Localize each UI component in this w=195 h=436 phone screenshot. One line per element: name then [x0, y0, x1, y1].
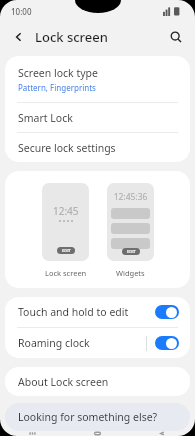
button[interactable]: Roaming clock	[155, 336, 179, 350]
button[interactable]: Secure lock settings	[5, 133, 190, 162]
staticText: Smart Lock	[18, 111, 73, 125]
button[interactable]: Home	[65, 431, 130, 436]
staticText: Secure lock settings	[18, 141, 116, 155]
button[interactable]: Back	[130, 431, 195, 436]
button[interactable]: Looking for something else?	[5, 403, 190, 431]
button[interactable]: 12:45	[42, 183, 89, 278]
staticText: Lock screen	[35, 28, 108, 46]
staticText: 10:00	[11, 6, 32, 17]
staticText: Pattern, Fingerprints	[18, 82, 96, 93]
button[interactable]: 12:45:36	[107, 183, 154, 278]
staticText: EDIT	[127, 249, 136, 254]
staticText: Looking for something else?	[18, 410, 158, 424]
staticText: 12:45	[53, 204, 79, 218]
button[interactable]: Touch and hold to edit	[155, 305, 179, 319]
button[interactable]: Smart Lock	[5, 103, 190, 132]
button[interactable]: About Lock screen	[5, 367, 190, 396]
button[interactable]: Back	[6, 24, 32, 50]
staticText: Widgets	[116, 268, 145, 278]
staticText: Lock screen	[45, 268, 87, 278]
staticText: EDIT	[62, 248, 71, 253]
button[interactable]: Roaming clock	[5, 328, 190, 358]
button[interactable]: Touch and hold to edit	[5, 297, 190, 327]
button[interactable]: Recents	[0, 431, 65, 436]
staticText: 12:45:36	[111, 191, 150, 203]
button[interactable]: Screen lock type	[5, 56, 190, 102]
staticText: Touch and hold to edit	[18, 305, 129, 319]
staticText: Screen lock type	[18, 66, 98, 80]
staticText: Roaming clock	[18, 336, 90, 350]
button[interactable]: Search	[163, 24, 189, 50]
staticText: About Lock screen	[18, 375, 109, 389]
